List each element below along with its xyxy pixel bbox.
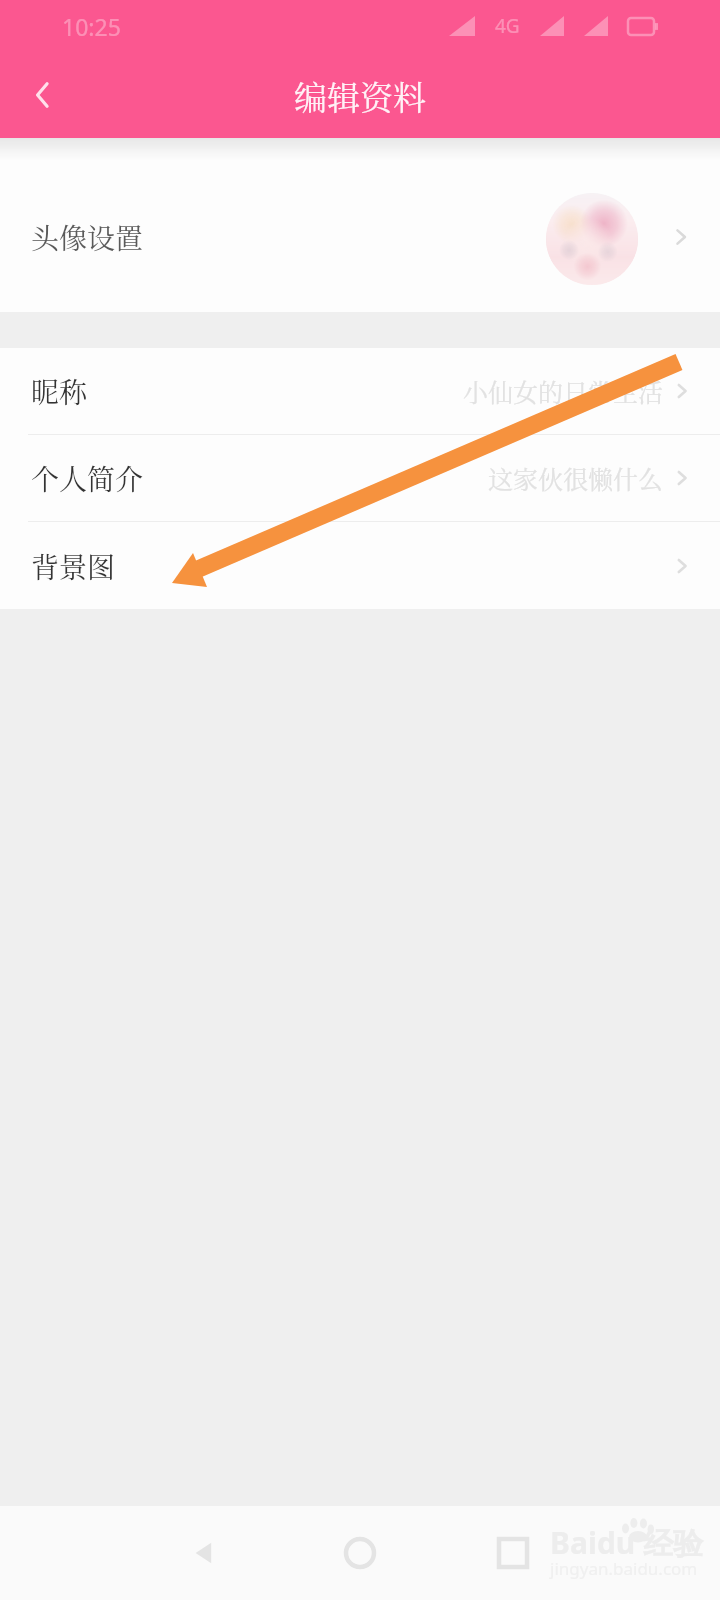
staticText: 4G	[495, 13, 520, 39]
staticText: 头像设置	[31, 217, 144, 257]
button[interactable]: 返回	[172, 1521, 236, 1585]
staticText: 这家伙很懒什么	[488, 460, 664, 496]
staticText: 小仙女的日常生活	[463, 373, 664, 409]
button[interactable]: 昵称	[0, 348, 720, 434]
staticText: 10:25	[62, 11, 121, 42]
button[interactable]: 头像设置	[0, 138, 720, 312]
button[interactable]: 个人简介	[0, 435, 720, 521]
staticText: 编辑资料	[294, 72, 426, 119]
button[interactable]: 返回	[0, 52, 86, 138]
staticText: 背景图	[31, 546, 116, 586]
button[interactable]: 最近任务	[481, 1521, 545, 1585]
button[interactable]: 主页	[328, 1521, 392, 1585]
staticText: 昵称	[31, 371, 88, 411]
button[interactable]: 背景图	[0, 522, 720, 609]
staticText: jingyan.baidu.com	[550, 1557, 698, 1580]
staticText: 个人简介	[31, 458, 144, 498]
staticText: Baidu 经验	[550, 1522, 704, 1563]
